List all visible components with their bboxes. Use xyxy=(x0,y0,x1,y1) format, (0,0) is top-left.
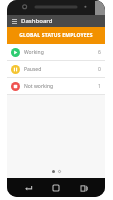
button[interactable]: Page 2 xyxy=(58,170,61,173)
button[interactable]: Working xyxy=(7,44,105,60)
button[interactable]: Open navigation menu xyxy=(10,17,18,25)
staticText: GLOBAL STATUS EMPLOYEES xyxy=(19,32,93,39)
button[interactable]: Page 1 xyxy=(52,170,55,173)
staticText: Dashboard xyxy=(21,17,53,25)
button[interactable]: Home xyxy=(49,181,63,195)
staticText: 6 xyxy=(98,49,101,56)
staticText: Working xyxy=(24,49,98,56)
button[interactable]: GLOBAL STATUS EMPLOYEES xyxy=(7,27,105,44)
button[interactable]: Not working xyxy=(7,78,105,94)
staticText: 1 xyxy=(98,83,101,90)
staticText: Paused xyxy=(24,66,98,73)
staticText: 0 xyxy=(98,66,101,73)
staticText: Not working xyxy=(24,83,98,90)
button[interactable]: Paused xyxy=(7,61,105,77)
button[interactable]: Back xyxy=(21,181,35,195)
button[interactable]: Recent apps xyxy=(77,181,91,195)
